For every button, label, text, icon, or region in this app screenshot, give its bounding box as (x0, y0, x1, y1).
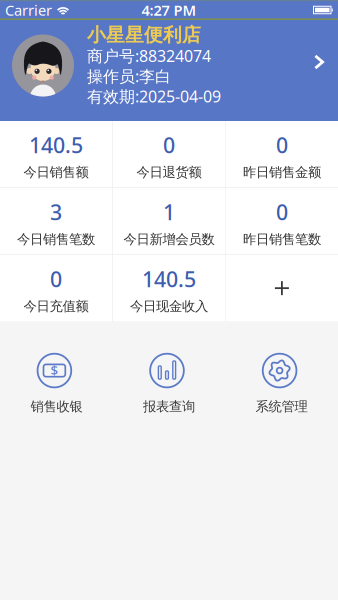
staticText: 销售收银 (30, 398, 82, 415)
button[interactable]: 系统管理 (225, 353, 338, 415)
staticText: Carrier (5, 0, 52, 20)
button[interactable]: 小星星便利店 (0, 20, 338, 121)
staticText: 今日充值额 (24, 298, 89, 314)
staticText: 0 (276, 131, 288, 159)
button[interactable]: 添加 (226, 255, 338, 321)
button[interactable]: 3 (0, 188, 112, 254)
staticText: 1 (163, 198, 175, 226)
staticText: 有效期:2025-04-09 (87, 86, 221, 107)
staticText: 今日现金收入 (130, 298, 208, 314)
staticText: 140.5 (142, 265, 196, 293)
staticText: 今日新增会员数 (123, 231, 214, 247)
button[interactable]: 0 (0, 255, 112, 321)
staticText: 4:27 PM (141, 0, 196, 20)
staticText: 140.5 (29, 131, 83, 159)
staticText: 系统管理 (256, 398, 308, 415)
staticText: 0 (163, 131, 175, 159)
staticText: 报表查询 (143, 398, 195, 415)
staticText: 今日销售笔数 (17, 231, 95, 247)
button[interactable]: 报表查询 (113, 353, 225, 415)
staticText: 今日销售额 (24, 164, 89, 180)
button[interactable]: 0 (226, 121, 338, 187)
staticText: 0 (50, 265, 62, 293)
button[interactable]: 140.5 (113, 255, 225, 321)
staticText: 商户号:88324074 (87, 45, 211, 66)
staticText: 操作员:李白 (87, 65, 171, 87)
button[interactable]: $ (0, 353, 113, 415)
button[interactable]: 1 (113, 188, 225, 254)
staticText: 昨日销售笔数 (243, 231, 321, 247)
button[interactable]: 0 (113, 121, 225, 187)
staticText: 小星星便利店 (87, 24, 201, 46)
staticText: $ (50, 361, 58, 379)
button[interactable]: 0 (226, 188, 338, 254)
button[interactable]: 140.5 (0, 121, 112, 187)
staticText: 0 (276, 198, 288, 226)
staticText: 3 (50, 198, 62, 226)
staticText: 昨日销售金额 (243, 164, 321, 180)
staticText: 今日退货额 (136, 164, 201, 180)
